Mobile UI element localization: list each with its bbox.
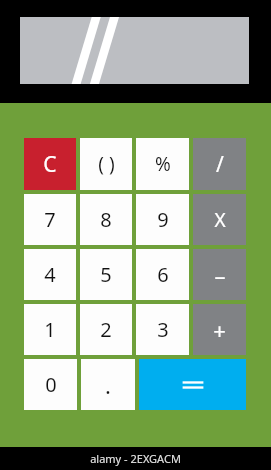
button[interactable]: Multiply [193, 194, 246, 245]
button[interactable]: 2 [80, 304, 132, 355]
staticText: ( ) [98, 151, 115, 177]
button[interactable]: Plus [193, 304, 246, 355]
staticText: + [213, 315, 226, 345]
button[interactable]: . [81, 359, 135, 410]
button[interactable]: 1 [24, 304, 76, 355]
staticText: 8 [100, 206, 112, 233]
button[interactable]: 7 [24, 194, 76, 245]
button[interactable]: 8 [80, 194, 132, 245]
button[interactable]: 5 [80, 249, 132, 300]
staticText: % [155, 151, 171, 177]
staticText: C [43, 150, 57, 179]
staticText: alamy - 2EXGACM [90, 451, 181, 466]
staticText: 1 [44, 316, 56, 343]
button[interactable]: 3 [136, 304, 189, 355]
button[interactable]: 4 [24, 249, 76, 300]
staticText: 3 [157, 316, 169, 343]
staticText: 7 [44, 206, 56, 233]
button[interactable]: C [24, 138, 76, 190]
button[interactable]: Divide [193, 138, 246, 190]
button[interactable]: Equals [139, 359, 246, 410]
staticText: . [105, 370, 111, 400]
button[interactable]: 9 [136, 194, 189, 245]
button[interactable]: % [136, 138, 189, 190]
staticText: X [214, 207, 226, 233]
button[interactable]: 6 [136, 249, 189, 300]
staticText: – [214, 260, 226, 290]
staticText: 6 [157, 261, 169, 288]
staticText: 2 [100, 316, 112, 343]
button[interactable]: ( ) [80, 138, 132, 190]
staticText: 4 [44, 261, 56, 288]
staticText: / [216, 150, 224, 179]
staticText: 0 [45, 371, 57, 398]
button[interactable]: Minus [193, 249, 246, 300]
staticText: 5 [100, 261, 112, 288]
staticText: 9 [157, 206, 169, 233]
button[interactable]: 0 [24, 359, 77, 410]
